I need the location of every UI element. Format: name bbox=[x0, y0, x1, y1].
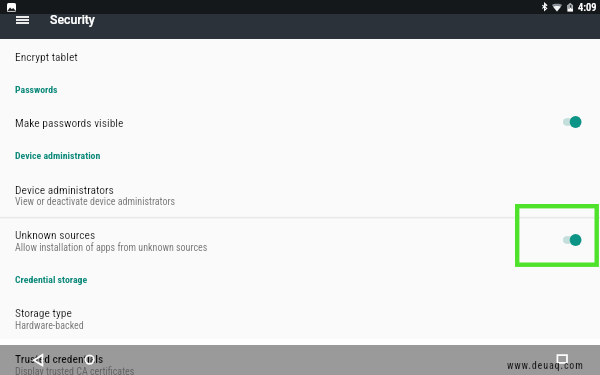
staticText: Make passwords visible bbox=[15, 116, 124, 129]
button[interactable] bbox=[0, 104, 600, 139]
staticText: Device administrators bbox=[15, 183, 114, 196]
staticText: Unknown sources bbox=[15, 228, 96, 241]
button[interactable]: Toggle, on bbox=[558, 114, 594, 130]
staticText: 4:09 bbox=[578, 1, 597, 13]
button[interactable] bbox=[0, 174, 600, 217]
staticText: View or deactivate device administrators bbox=[15, 196, 176, 208]
staticText: Passwords bbox=[15, 84, 58, 95]
button[interactable] bbox=[0, 345, 600, 375]
staticText: Display trusted CA certificates bbox=[15, 366, 135, 375]
staticText: Encrypt tablet bbox=[15, 50, 78, 63]
button[interactable]: Toggle, on bbox=[558, 232, 594, 248]
button[interactable] bbox=[0, 296, 600, 336]
staticText: www.deuaq.com bbox=[507, 360, 584, 372]
staticText: Hardware-backed bbox=[15, 320, 84, 332]
button[interactable]: Open navigation menu bbox=[10, 10, 35, 29]
button[interactable] bbox=[0, 218, 600, 262]
staticText: Allow installation of apps from unknown … bbox=[15, 242, 208, 254]
staticText: Trusted credentials bbox=[15, 352, 104, 365]
staticText: Security bbox=[50, 13, 95, 27]
staticText: Device administration bbox=[15, 150, 101, 161]
staticText: Credential storage bbox=[15, 274, 88, 285]
staticText: Storage type bbox=[15, 306, 72, 319]
button[interactable] bbox=[0, 39, 600, 78]
